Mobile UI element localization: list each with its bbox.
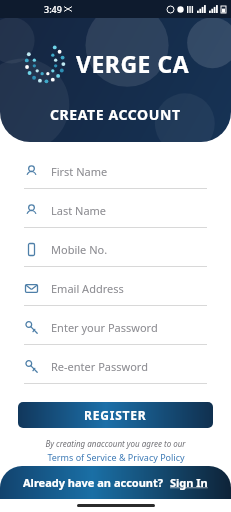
staticText: By creating anaccount you agree to our [45, 438, 186, 449]
button[interactable]: Last Name [0, 193, 231, 232]
button[interactable]: First Name [0, 154, 231, 193]
button[interactable]: Re-enter Password [0, 349, 231, 388]
button[interactable]: Terms of Service & Privacy Policy [47, 451, 185, 463]
staticText: Terms of Service & Privacy Policy [47, 451, 185, 463]
staticText: Already have an account? [23, 475, 164, 490]
staticText: First Name [51, 164, 108, 179]
staticText: 3:49 [44, 3, 62, 15]
button[interactable]: REGISTER [18, 402, 213, 428]
button[interactable]: Mobile No. [0, 232, 231, 271]
staticText: REGISTER [84, 407, 147, 423]
button[interactable]: Enter your Password [0, 310, 231, 349]
button[interactable]: Sign In [170, 475, 208, 490]
staticText: Last Name [51, 203, 107, 218]
staticText: Sign In [170, 475, 208, 490]
button[interactable]: Email Address [0, 271, 231, 310]
staticText: Enter your Password [51, 320, 158, 335]
staticText: Re-enter Password [51, 359, 148, 374]
staticText: Mobile No. [51, 242, 108, 257]
staticText: CREATE ACCOUNT [50, 105, 181, 124]
staticText: VERGE CA [76, 48, 190, 79]
staticText: Email Address [51, 281, 124, 296]
